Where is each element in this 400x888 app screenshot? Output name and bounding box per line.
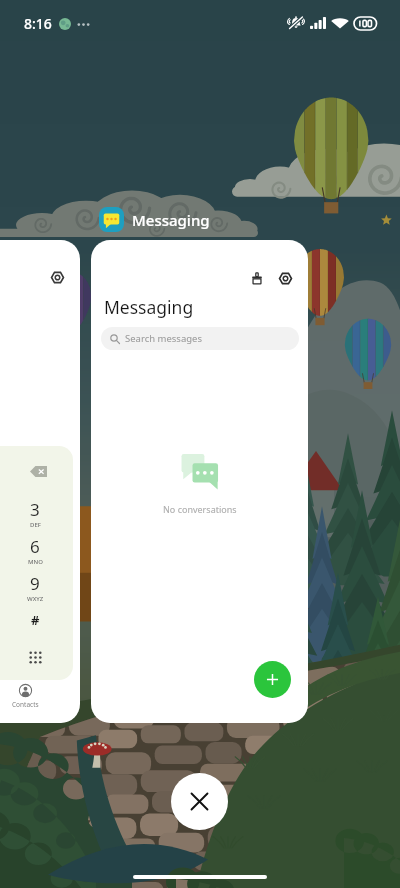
- button[interactable]: 9: [13, 572, 57, 608]
- staticText: #: [31, 611, 40, 629]
- staticText: 8:16: [24, 14, 52, 33]
- staticText: Messaging: [132, 210, 210, 230]
- button[interactable]: #: [22, 607, 48, 633]
- staticText: Messaging: [104, 295, 194, 319]
- staticText: 9: [30, 572, 40, 595]
- button[interactable]: 6: [13, 535, 57, 571]
- button[interactable]: Clean up: [91, 240, 308, 723]
- staticText: DEF: [30, 521, 41, 529]
- staticText: 3: [30, 498, 40, 521]
- staticText: WXYZ: [27, 595, 44, 603]
- button[interactable]: Search messages: [101, 327, 299, 350]
- button[interactable]: New conversation: [254, 661, 291, 698]
- button[interactable]: Contacts: [5, 684, 45, 709]
- staticText: 6: [30, 535, 40, 558]
- button[interactable]: Settings: [274, 267, 296, 289]
- button[interactable]: Clear all: [171, 773, 228, 830]
- staticText: Search messages: [125, 332, 202, 345]
- staticText: No conversations: [163, 503, 237, 515]
- other: Dialer settings: [51, 271, 64, 284]
- staticText: Contacts: [12, 700, 39, 709]
- staticText: MNO: [28, 558, 43, 566]
- button[interactable]: Keypad: [28, 650, 43, 665]
- button[interactable]: 3: [13, 498, 57, 534]
- button[interactable]: Clean up: [246, 267, 268, 289]
- button[interactable]: Delete: [30, 466, 47, 477]
- button[interactable]: Dialer settings: [0, 240, 80, 723]
